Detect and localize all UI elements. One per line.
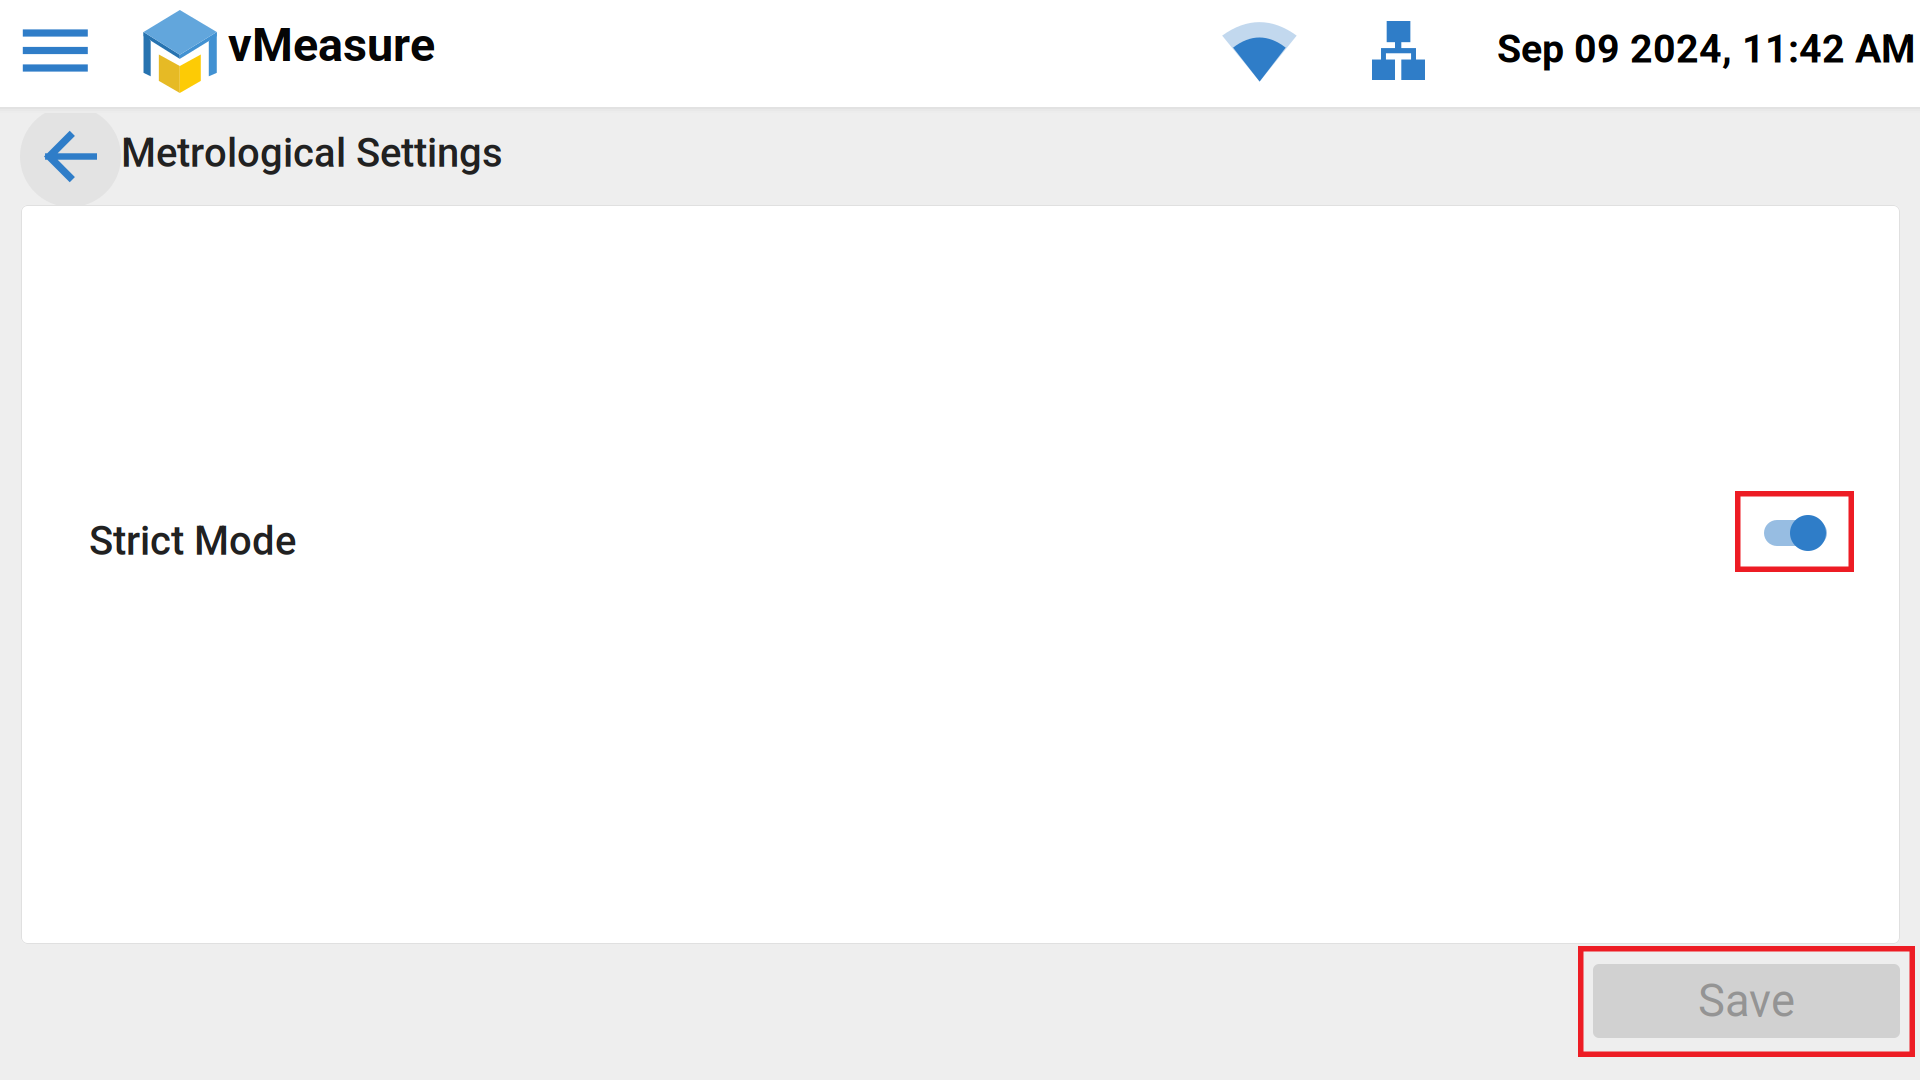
staticText: Strict Mode <box>89 518 296 564</box>
staticText: Save <box>1698 974 1795 1027</box>
button[interactable]: Open navigation menu <box>0 0 112 107</box>
button[interactable]: Strict Mode, on <box>1735 491 1854 572</box>
staticText: Sep 09 2024, 11:42 AM <box>1497 26 1915 72</box>
button[interactable]: Back <box>20 106 121 207</box>
staticText: vMeasure <box>228 18 435 72</box>
button[interactable]: Save <box>1593 964 1900 1038</box>
staticText: Metrological Settings <box>121 130 503 176</box>
